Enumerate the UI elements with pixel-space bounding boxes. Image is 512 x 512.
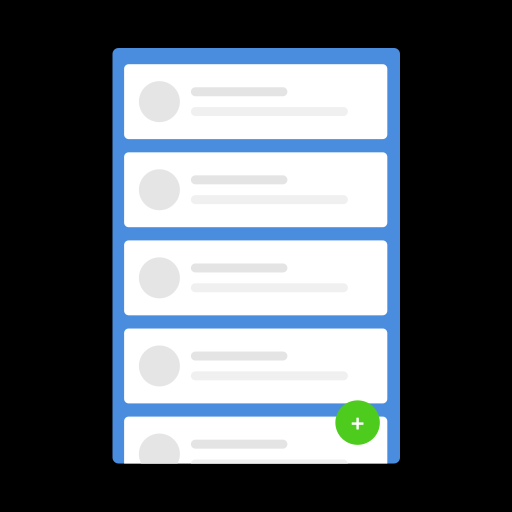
button[interactable] — [124, 152, 387, 227]
button[interactable] — [124, 240, 387, 315]
button[interactable] — [124, 417, 387, 491]
button[interactable] — [124, 64, 387, 139]
button[interactable] — [124, 328, 387, 403]
button[interactable]: Add — [335, 400, 380, 445]
